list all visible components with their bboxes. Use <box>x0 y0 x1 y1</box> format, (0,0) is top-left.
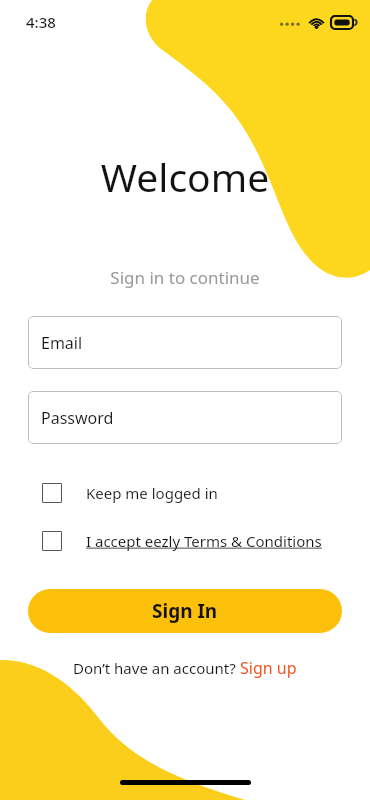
staticText: Welcome <box>0 150 370 203</box>
staticText: Sign in to continue <box>0 266 370 289</box>
staticText: Password <box>41 407 114 429</box>
staticText: Sign up <box>240 657 297 679</box>
button[interactable]: Password <box>28 391 342 444</box>
button[interactable]: Email <box>28 316 342 369</box>
staticText: Don’t have an account? <box>73 658 240 678</box>
staticText: Email <box>41 332 83 354</box>
button[interactable]: Sign In <box>28 589 342 633</box>
staticText: Sign In <box>152 598 218 624</box>
button[interactable]: Sign up <box>240 657 297 679</box>
button[interactable]: I accept eezly Terms & Conditions <box>0 531 370 551</box>
staticText: Keep me logged in <box>86 483 218 503</box>
staticText: I accept eezly Terms & Conditions <box>86 531 322 551</box>
button[interactable]: Keep me logged in <box>0 483 370 503</box>
staticText: 4:38 <box>26 12 56 32</box>
